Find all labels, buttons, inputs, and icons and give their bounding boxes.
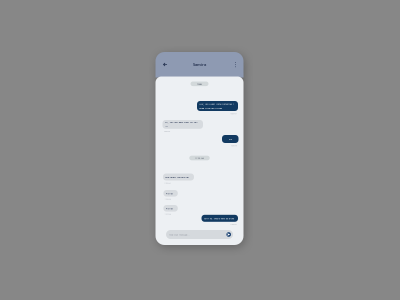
staticText: 11:25 AM xyxy=(164,182,171,184)
staticText: Hi, I'm just back from 1st call xyxy=(165,121,198,124)
staticText: ikk xyxy=(165,125,168,128)
button[interactable]: Type your message... xyxy=(166,230,233,239)
button[interactable]: Back xyxy=(160,59,170,69)
staticText: 10:35 AM xyxy=(163,130,170,133)
staticText: Type your message... xyxy=(169,233,190,236)
staticText: Today xyxy=(197,82,202,85)
button[interactable]: More options xyxy=(231,59,239,69)
staticText: Pick up xyxy=(166,207,173,210)
staticText: 11:20 AM xyxy=(195,156,204,159)
staticText: 11:27 AM xyxy=(164,213,171,215)
staticText: 10:30 AM xyxy=(230,112,237,115)
staticText: 10:36 AM xyxy=(230,144,237,147)
staticText: Samira xyxy=(193,62,206,67)
staticText: 11:40 AM xyxy=(230,223,237,226)
staticText: sorry ha, should have ab pick'd xyxy=(204,217,234,220)
staticText: Pick up xyxy=(166,192,173,195)
staticText: Ok xyxy=(229,137,232,141)
staticText: Hey, are u gon' come tomorrow ? xyxy=(199,102,234,105)
staticText: 11:26 AM xyxy=(164,198,171,200)
staticText: why didn't you pick up xyxy=(165,175,188,179)
staticText: what time are u free? xyxy=(199,107,222,110)
